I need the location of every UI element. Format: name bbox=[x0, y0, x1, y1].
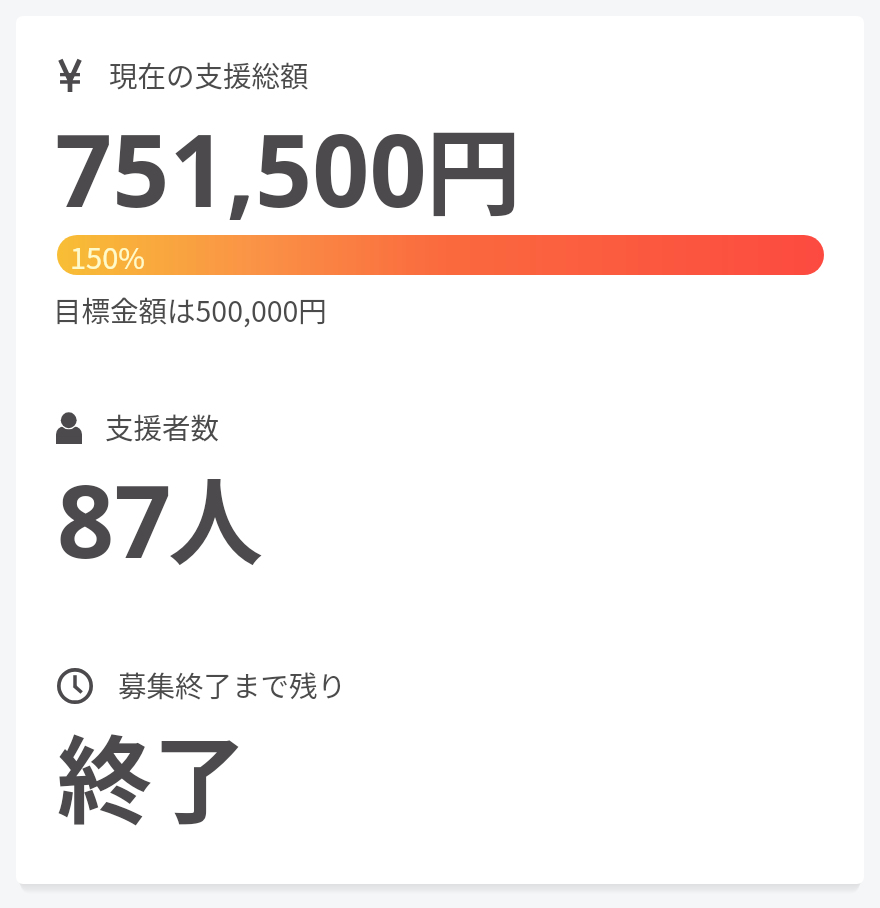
button[interactable]: Backers bbox=[46, 400, 246, 458]
staticText: 87 bbox=[57, 451, 172, 587]
button[interactable]: 150% bbox=[57, 235, 824, 275]
staticText: 現在の支援総額 bbox=[109, 54, 309, 95]
button[interactable]: Japanese yen bbox=[46, 46, 336, 106]
other: Backers bbox=[56, 412, 82, 444]
button[interactable] bbox=[16, 16, 864, 884]
staticText: 目標金額は500,000円 bbox=[53, 289, 327, 330]
staticText: 支援者数 bbox=[105, 406, 220, 447]
staticText: 人 bbox=[168, 448, 264, 586]
staticText: 751,500 bbox=[55, 100, 427, 236]
other: Time remaining bbox=[57, 668, 93, 704]
staticText: 150% bbox=[70, 235, 145, 275]
button[interactable]: Time remaining bbox=[46, 658, 366, 716]
staticText: 終了 bbox=[57, 706, 248, 844]
other: Japanese yen bbox=[58, 59, 82, 92]
staticText: 募集終了まで残り bbox=[118, 664, 347, 705]
staticText: 円 bbox=[426, 98, 522, 236]
